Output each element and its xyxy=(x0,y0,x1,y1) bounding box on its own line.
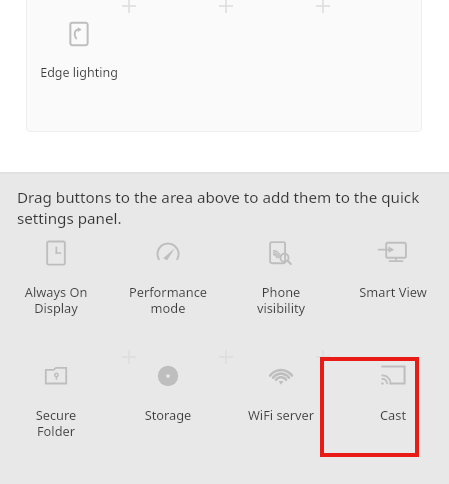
button[interactable]: Smart View xyxy=(337,236,449,300)
other: Performance mode xyxy=(151,236,185,270)
staticText: Secure Folder xyxy=(0,406,112,439)
other: Always On Display xyxy=(39,236,73,270)
staticText: Performance mode xyxy=(112,283,224,316)
staticText: Edge lighting xyxy=(40,64,118,81)
staticText: Cast xyxy=(337,406,449,423)
button[interactable]: Performance mode xyxy=(112,236,224,316)
button[interactable]: Phone visibility xyxy=(225,236,337,316)
other: Smart View xyxy=(376,236,410,270)
staticText: Always On Display xyxy=(0,283,112,316)
staticText: WiFi server xyxy=(225,406,337,423)
other: WiFi server xyxy=(264,359,298,393)
other: Secure Folder xyxy=(39,359,73,393)
other: Cast xyxy=(376,359,410,393)
button[interactable]: WiFi server xyxy=(225,359,337,423)
button[interactable]: Always On Display xyxy=(0,236,112,316)
other: Phone visibility xyxy=(264,236,298,270)
other: Edge lighting xyxy=(61,16,97,52)
staticText: Smart View xyxy=(337,283,449,300)
button[interactable]: Secure Folder xyxy=(0,359,112,439)
staticText: Phone visibility xyxy=(225,283,337,316)
button[interactable]: Storage xyxy=(112,359,224,423)
button[interactable]: Cast xyxy=(337,359,449,423)
staticText: Drag buttons to the area above to add th… xyxy=(17,187,431,229)
staticText: Storage xyxy=(112,406,224,423)
button[interactable]: Edge lighting xyxy=(40,16,118,81)
other: Storage xyxy=(151,359,185,393)
